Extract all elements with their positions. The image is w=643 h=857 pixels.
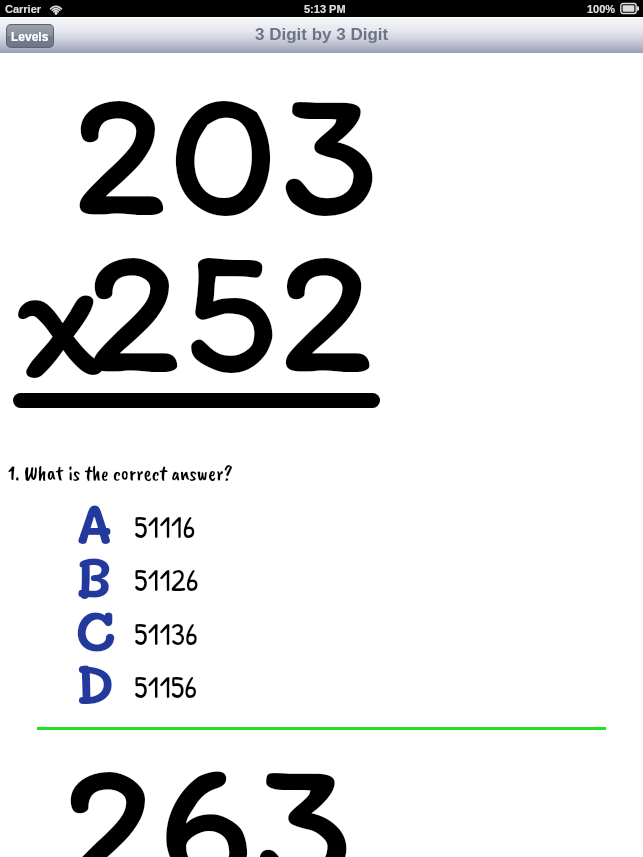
staticText: 51126 bbox=[134, 558, 199, 601]
staticText: 51136 bbox=[134, 612, 198, 655]
staticText: 51116 bbox=[134, 505, 196, 548]
staticText: B bbox=[75, 539, 113, 610]
staticText: 1. What is the correct answer? bbox=[8, 460, 233, 486]
staticText: 100% bbox=[587, 3, 616, 15]
staticText: x bbox=[14, 202, 105, 422]
staticText: 263 bbox=[61, 712, 354, 857]
button[interactable]: 51126 bbox=[70, 560, 310, 612]
staticText: Carrier bbox=[5, 3, 42, 15]
staticText: 3 Digit by 3 Digit bbox=[255, 25, 389, 44]
staticText: 203 bbox=[71, 41, 380, 261]
button[interactable]: 51136 bbox=[70, 614, 310, 666]
staticText: C bbox=[75, 593, 116, 664]
button[interactable]: 51116 bbox=[70, 507, 310, 559]
staticText: 5:13 PM bbox=[304, 3, 346, 15]
button[interactable]: 51156 bbox=[70, 667, 310, 719]
staticText: A bbox=[75, 486, 114, 557]
button[interactable]: Levels bbox=[7, 25, 53, 47]
staticText: D bbox=[75, 646, 115, 717]
staticText: 51156 bbox=[134, 665, 198, 708]
staticText: 252 bbox=[85, 198, 374, 418]
staticText: Levels bbox=[11, 30, 49, 43]
